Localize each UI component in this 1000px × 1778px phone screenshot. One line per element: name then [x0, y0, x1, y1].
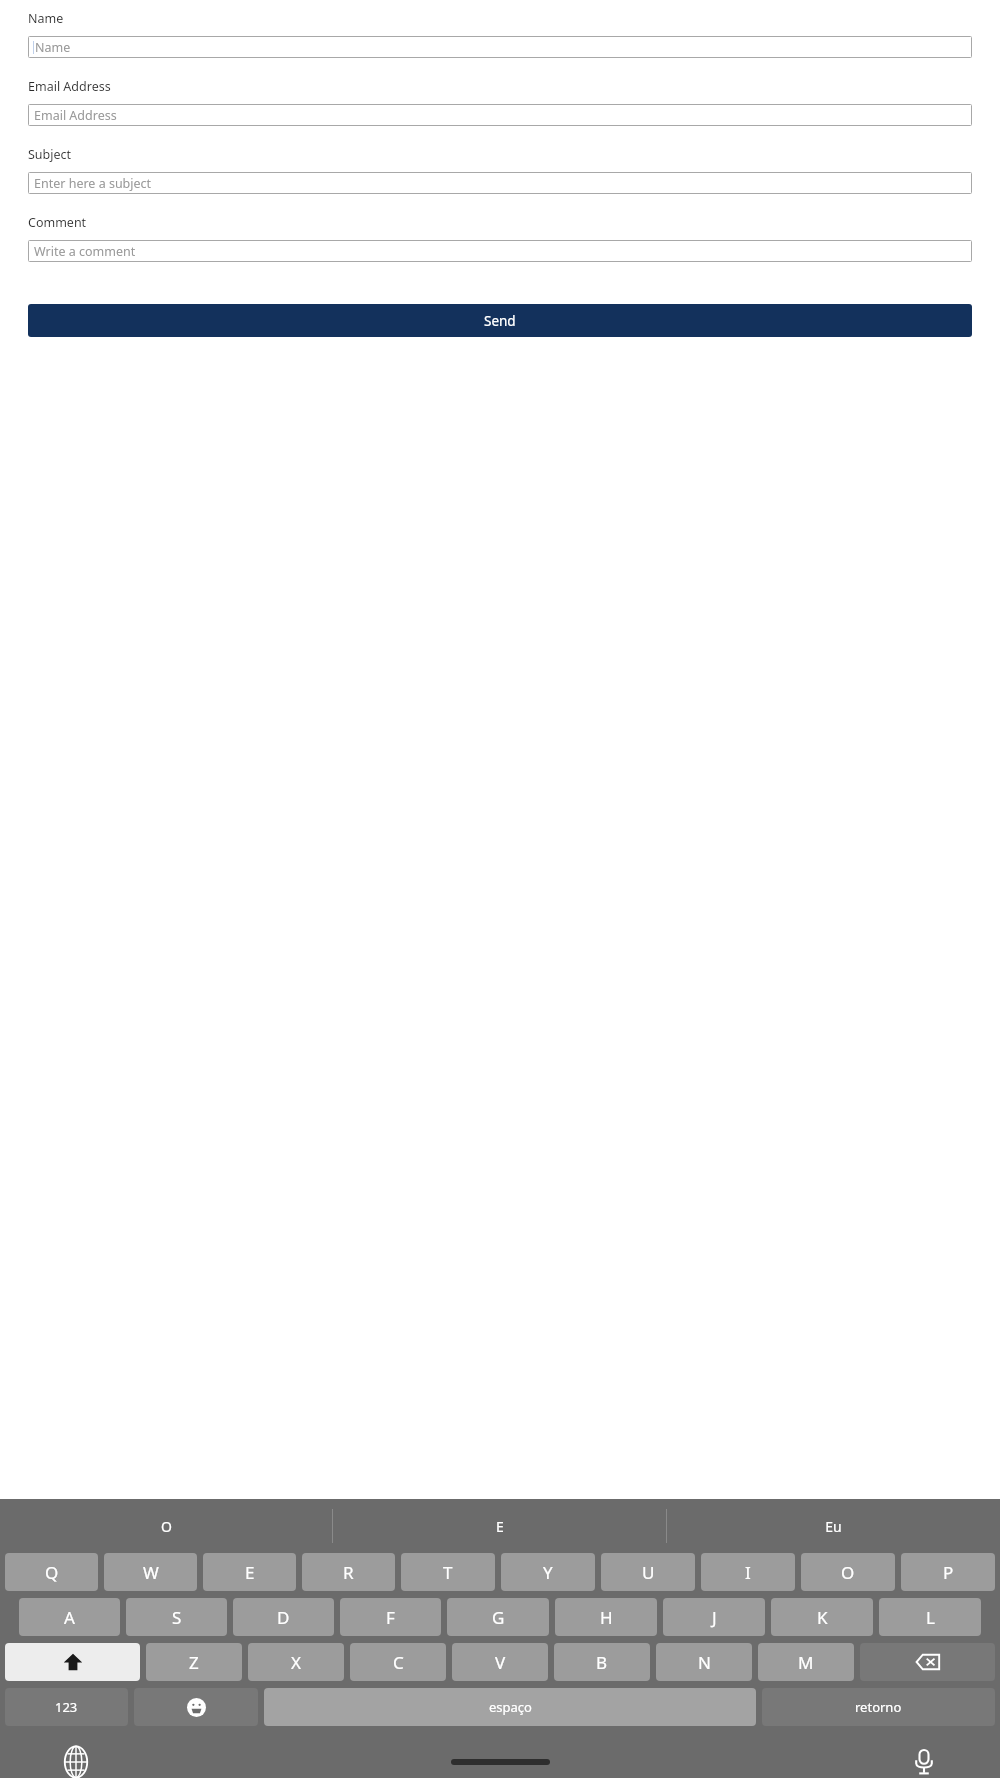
button[interactable]: Name [28, 36, 972, 58]
button[interactable]: P [901, 1553, 995, 1591]
button[interactable]: Voice input [904, 1742, 944, 1778]
staticText: F [386, 1606, 395, 1629]
button[interactable]: Send [28, 304, 972, 337]
staticText: Eu [825, 1517, 842, 1536]
staticText: Subject [28, 146, 72, 163]
staticText: M [798, 1651, 814, 1674]
staticText: Email Address [28, 78, 111, 95]
button[interactable]: A [19, 1598, 120, 1636]
button[interactable]: Y [501, 1553, 595, 1591]
button[interactable]: E [203, 1553, 296, 1591]
button[interactable]: M [758, 1643, 854, 1681]
button[interactable]: E [333, 1499, 666, 1553]
staticText: G [492, 1606, 505, 1629]
button[interactable]: Eu [667, 1499, 1000, 1553]
staticText: P [943, 1561, 954, 1584]
staticText: O [841, 1561, 855, 1584]
staticText: E [245, 1561, 255, 1584]
staticText: Z [189, 1651, 199, 1674]
staticText: Write a comment [34, 243, 136, 260]
button[interactable]: 123 [5, 1688, 128, 1726]
button[interactable]: Email Address [28, 104, 972, 126]
staticText: T [443, 1561, 453, 1584]
button[interactable]: Shift [5, 1643, 140, 1681]
staticText: B [596, 1651, 608, 1674]
staticText: D [277, 1606, 290, 1629]
staticText: Comment [28, 214, 87, 231]
button[interactable]: T [401, 1553, 495, 1591]
staticText: C [393, 1651, 404, 1674]
button[interactable]: C [350, 1643, 446, 1681]
button[interactable]: I [701, 1553, 795, 1591]
staticText: retorno [855, 1698, 902, 1716]
staticText: espaço [489, 1698, 532, 1716]
staticText: 123 [55, 1698, 78, 1716]
staticText: Name [28, 10, 64, 27]
staticText: N [698, 1651, 711, 1674]
button[interactable]: L [879, 1598, 981, 1636]
staticText: U [642, 1561, 655, 1584]
button[interactable]: espaço [264, 1688, 756, 1726]
staticText: L [926, 1606, 935, 1629]
button[interactable]: R [302, 1553, 395, 1591]
button[interactable]: H [555, 1598, 657, 1636]
staticText: Enter here a subject [34, 175, 152, 192]
staticText: W [143, 1561, 159, 1584]
button[interactable]: O [801, 1553, 895, 1591]
button[interactable]: Change keyboard language [56, 1742, 96, 1778]
staticText: O [161, 1517, 172, 1536]
staticText: A [64, 1606, 75, 1629]
button[interactable]: Enter here a subject [28, 172, 972, 194]
button[interactable]: F [340, 1598, 441, 1636]
button[interactable]: N [656, 1643, 752, 1681]
staticText: Name [35, 39, 71, 56]
staticText: S [172, 1606, 182, 1629]
button[interactable]: O [0, 1499, 332, 1553]
staticText: Send [484, 312, 516, 330]
staticText: Q [45, 1561, 59, 1584]
staticText: J [712, 1606, 717, 1629]
button[interactable]: retorno [762, 1688, 995, 1726]
button[interactable]: W [104, 1553, 197, 1591]
button[interactable]: Emoji [134, 1688, 258, 1726]
button[interactable]: Q [5, 1553, 98, 1591]
staticText: H [600, 1606, 613, 1629]
staticText: K [817, 1606, 828, 1629]
button[interactable]: S [126, 1598, 227, 1636]
button[interactable]: D [233, 1598, 334, 1636]
button[interactable]: K [771, 1598, 873, 1636]
button[interactable]: X [248, 1643, 344, 1681]
staticText: R [343, 1561, 354, 1584]
staticText: V [495, 1651, 506, 1674]
button[interactable]: G [447, 1598, 549, 1636]
staticText: Y [543, 1561, 553, 1584]
button[interactable]: Backspace [860, 1643, 995, 1681]
staticText: Email Address [34, 107, 117, 124]
staticText: E [496, 1517, 504, 1536]
staticText: I [745, 1561, 751, 1584]
staticText: X [291, 1651, 301, 1674]
button[interactable]: B [554, 1643, 650, 1681]
button[interactable]: J [663, 1598, 765, 1636]
button[interactable]: Write a comment [28, 240, 972, 262]
button[interactable]: Z [146, 1643, 242, 1681]
button[interactable]: U [601, 1553, 695, 1591]
button[interactable]: V [452, 1643, 548, 1681]
